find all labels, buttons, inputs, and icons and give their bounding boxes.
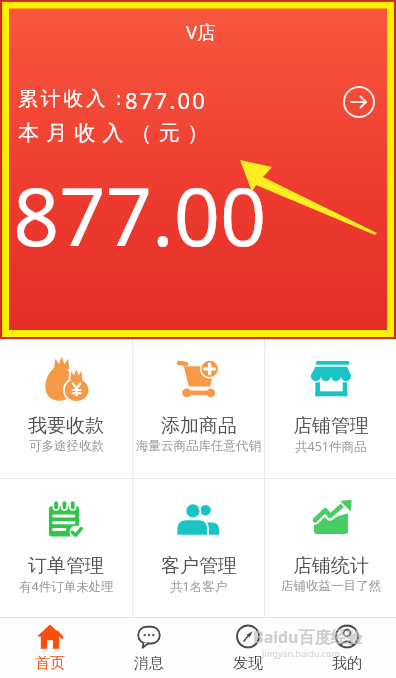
staticText: 877.00	[125, 85, 208, 115]
button[interactable]: 订单管理	[0, 479, 132, 617]
staticText: 我要收款	[28, 414, 104, 438]
staticText: 店铺收益一目了然	[281, 578, 381, 594]
staticText: 首页	[35, 654, 65, 673]
staticText: 店铺管理	[293, 414, 369, 438]
staticText: 有4件订单未处理	[19, 578, 114, 595]
button[interactable]: 店铺管理	[265, 339, 396, 478]
staticText: 共1名客户	[170, 578, 228, 595]
button[interactable]: 首页	[0, 618, 99, 678]
staticText: 海量云商品库任意代销	[136, 438, 261, 454]
button[interactable]: 店铺统计	[265, 479, 396, 617]
button[interactable]: 添加商品	[133, 339, 264, 478]
staticText: 消息	[134, 654, 164, 673]
staticText: 我的	[332, 654, 362, 673]
staticText: 添加商品	[161, 414, 237, 438]
staticText: 累计收入：	[18, 86, 132, 111]
button[interactable]: 我的	[297, 618, 396, 678]
staticText: 客户管理	[161, 554, 237, 578]
button[interactable]: 客户管理	[133, 479, 264, 617]
staticText: V店	[186, 19, 216, 44]
staticText: 发现	[233, 654, 263, 673]
staticText: Baidu百度经验	[253, 626, 363, 648]
staticText: 订单管理	[28, 554, 104, 578]
staticText: 877.00	[13, 159, 267, 269]
staticText: 可多途径收款	[29, 438, 104, 454]
staticText: 店铺统计	[293, 554, 369, 578]
button[interactable]: 我要收款	[0, 339, 132, 478]
staticText: jingyan.baidu.com	[262, 647, 340, 659]
button[interactable]: 发现	[198, 618, 297, 678]
staticText: 共451件商品	[295, 438, 367, 455]
button[interactable]: 消息	[99, 618, 198, 678]
staticText: 本月收入（元）	[18, 120, 216, 146]
